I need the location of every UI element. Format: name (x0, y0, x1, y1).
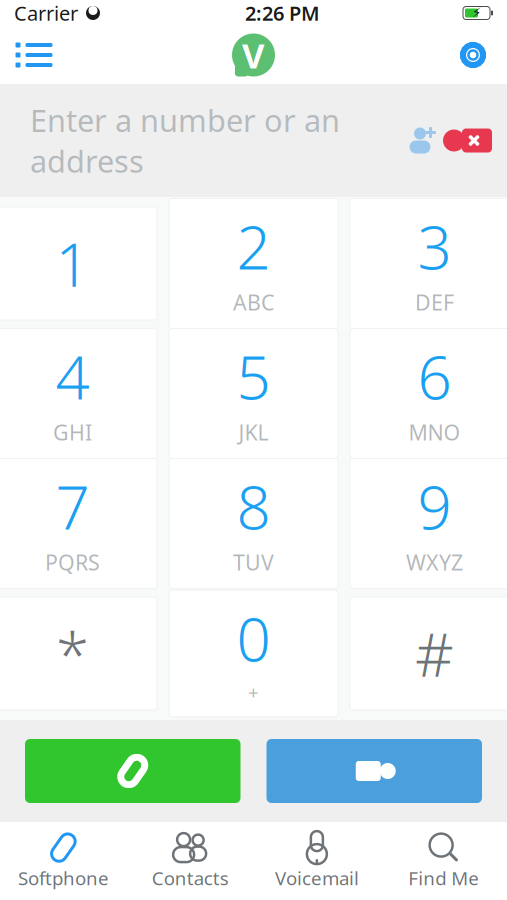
staticText: V (242, 32, 265, 78)
staticText: ABC (233, 288, 274, 316)
staticText: ⚡︎ (472, 5, 481, 20)
staticText: 5 (236, 336, 270, 416)
button[interactable]: 3 (350, 207, 507, 320)
button[interactable]: 9 (350, 467, 507, 580)
button[interactable]: * (0, 597, 157, 710)
button[interactable]: 8 (169, 467, 338, 580)
button[interactable]: 7 (0, 467, 157, 580)
button[interactable]: Call history (6, 30, 62, 80)
staticText: 6 (417, 336, 451, 416)
staticText: 2:26 PM (245, 0, 320, 26)
button[interactable]: # (350, 597, 507, 710)
staticText: DEF (415, 288, 454, 316)
button[interactable]: Settings (445, 30, 501, 80)
button[interactable]: Contacts (127, 829, 254, 893)
button[interactable]: Video call (266, 739, 482, 803)
button[interactable]: 4 (0, 337, 157, 450)
staticText: Contacts (152, 866, 229, 890)
staticText: 7 (55, 466, 89, 546)
staticText: Enter a number or an address (30, 100, 340, 181)
staticText: 0 (236, 598, 270, 678)
staticText: + (248, 680, 259, 705)
staticText: Voicemail (275, 866, 359, 890)
staticText: GHI (53, 418, 92, 446)
staticText: 3 (417, 206, 451, 286)
staticText: WXYZ (406, 548, 463, 576)
staticText: JKL (238, 418, 268, 446)
staticText: Softphone (18, 866, 109, 890)
staticText: Find Me (408, 866, 479, 890)
staticText: 9 (417, 466, 451, 546)
staticText: TUV (233, 548, 274, 576)
button[interactable]: 2 (169, 207, 338, 320)
button[interactable]: Voicemail (253, 829, 380, 893)
button[interactable]: Delete (443, 118, 495, 162)
button[interactable]: 1 (0, 207, 157, 320)
button[interactable]: 6 (350, 337, 507, 450)
staticText: * (56, 614, 89, 693)
button[interactable]: Softphone (0, 829, 127, 893)
staticText: 4 (55, 336, 89, 416)
staticText: 8 (236, 466, 270, 546)
button[interactable]: Call (25, 739, 240, 803)
staticText: Carrier (14, 0, 78, 26)
button[interactable]: 5 (169, 337, 338, 450)
staticText: MNO (408, 418, 460, 446)
staticText: PQRS (45, 548, 100, 576)
staticText: # (415, 614, 454, 693)
button[interactable]: Add contact (397, 118, 443, 162)
staticText: 2 (236, 206, 270, 286)
button[interactable]: Find Me (380, 829, 507, 893)
staticText: 1 (55, 224, 89, 303)
button[interactable]: 0 (169, 597, 338, 710)
